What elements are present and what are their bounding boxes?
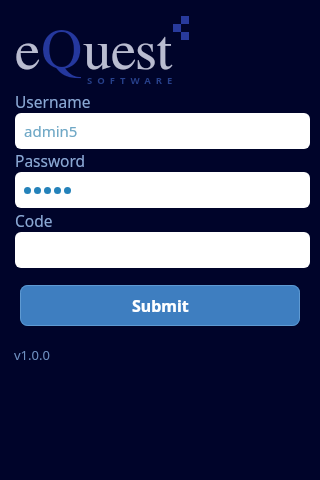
staticText: v1.0.0 [14,346,50,364]
staticText: uest [83,23,173,80]
staticText: Username [15,91,91,112]
staticText: Password [15,150,86,171]
staticText: Q [41,23,83,80]
staticText: admin5 [24,121,78,141]
staticText: e [15,23,41,80]
staticText: Submit [132,295,189,317]
button[interactable]: admin5 [15,113,310,149]
button[interactable] [15,232,310,268]
staticText: SOFTWARE [87,74,178,87]
button[interactable]: Submit [20,285,300,326]
staticText: Code [15,210,53,231]
button[interactable] [15,172,310,208]
